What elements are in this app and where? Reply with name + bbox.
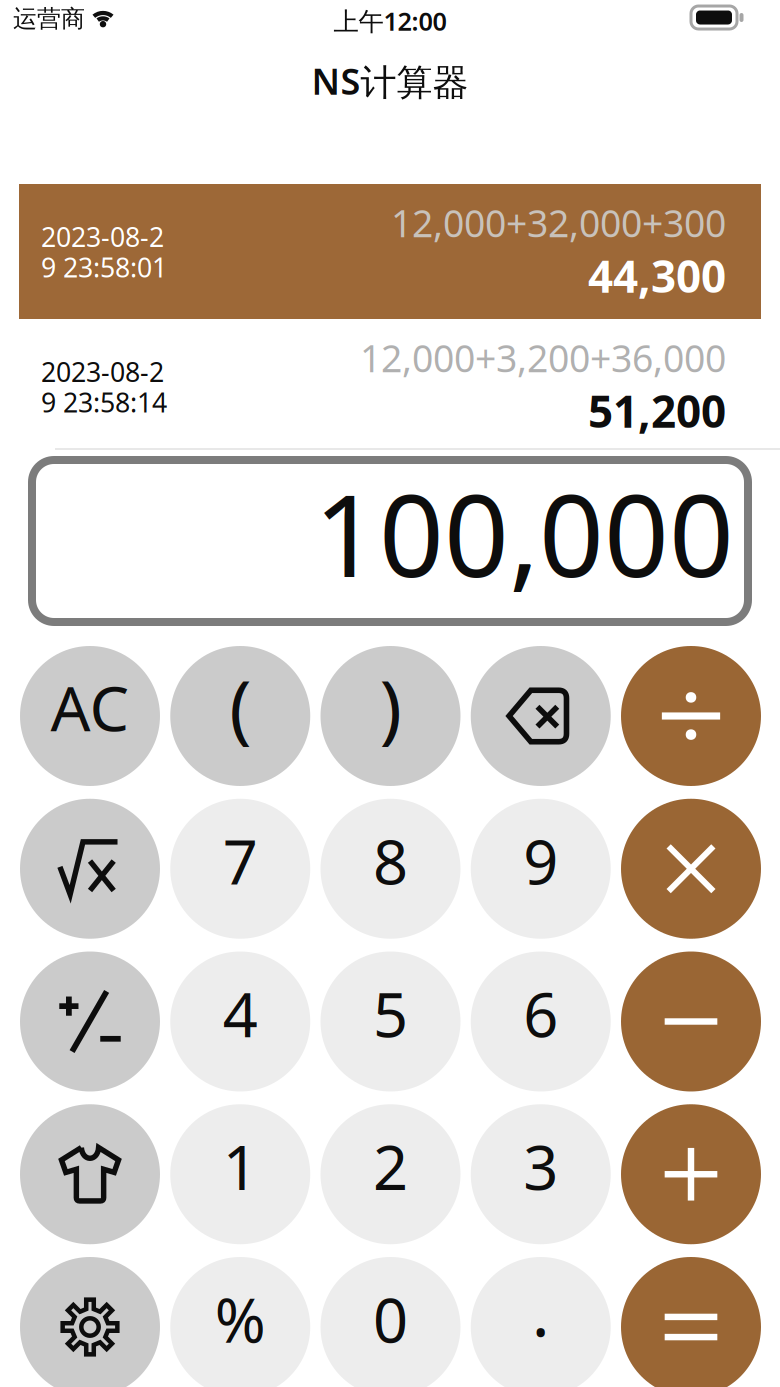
- button[interactable]: 7: [170, 799, 310, 939]
- button[interactable]: 4: [170, 951, 310, 1091]
- staticText: 9 23:58:14: [41, 384, 167, 420]
- button[interactable]: %: [170, 1257, 310, 1387]
- button[interactable]: .: [471, 1257, 611, 1387]
- button[interactable]: 2023-08-2: [19, 184, 761, 319]
- staticText: 100,000: [314, 458, 734, 608]
- button[interactable]: (: [170, 646, 310, 786]
- staticText: NS计算器: [311, 57, 468, 105]
- button[interactable]: 3: [471, 1104, 611, 1244]
- staticText: .: [532, 1267, 550, 1355]
- button[interactable]: 2023-08-2: [19, 319, 761, 454]
- staticText: 6: [523, 973, 558, 1054]
- button[interactable]: 8: [320, 799, 460, 939]
- button[interactable]: ): [320, 646, 460, 786]
- button[interactable]: Equals: [621, 1257, 761, 1387]
- staticText: 4: [223, 973, 258, 1054]
- staticText: 12,000+32,000+300: [391, 198, 726, 248]
- staticText: 2023-08-2: [41, 219, 164, 254]
- button[interactable]: AC: [20, 646, 160, 786]
- button[interactable]: Divide: [621, 646, 761, 786]
- button[interactable]: Square root: [20, 799, 160, 939]
- button[interactable]: 0: [320, 1257, 460, 1387]
- staticText: ): [379, 656, 401, 756]
- button[interactable]: Multiply: [621, 799, 761, 939]
- staticText: 9 23:58:01: [41, 249, 167, 285]
- button[interactable]: Plus or minus: [20, 951, 160, 1091]
- button[interactable]: Subtract: [621, 951, 761, 1091]
- staticText: 8: [373, 820, 408, 901]
- staticText: 2: [373, 1125, 408, 1207]
- button[interactable]: 1: [170, 1104, 310, 1244]
- staticText: 44,300: [588, 247, 726, 305]
- button[interactable]: 9: [471, 799, 611, 939]
- staticText: 2023-08-2: [41, 354, 164, 389]
- staticText: 运营商: [13, 4, 85, 33]
- staticText: 0: [373, 1278, 408, 1360]
- button[interactable]: Unit converter: [20, 1104, 160, 1244]
- staticText: %: [215, 1278, 266, 1360]
- button[interactable]: Delete: [471, 646, 611, 786]
- staticText: 5: [373, 973, 408, 1054]
- staticText: 上午12:00: [333, 4, 446, 38]
- staticText: 7: [223, 820, 258, 901]
- button[interactable]: 6: [471, 951, 611, 1091]
- staticText: AC: [50, 665, 129, 749]
- button[interactable]: 2: [320, 1104, 460, 1244]
- button[interactable]: Settings: [20, 1257, 160, 1387]
- staticText: (: [229, 656, 251, 756]
- staticText: 51,200: [588, 382, 726, 440]
- staticText: 3: [523, 1125, 558, 1207]
- button[interactable]: Add: [621, 1104, 761, 1244]
- staticText: 9: [523, 820, 558, 901]
- staticText: 12,000+3,200+36,000: [360, 333, 726, 383]
- staticText: 1: [223, 1125, 258, 1207]
- button[interactable]: 5: [320, 951, 460, 1091]
